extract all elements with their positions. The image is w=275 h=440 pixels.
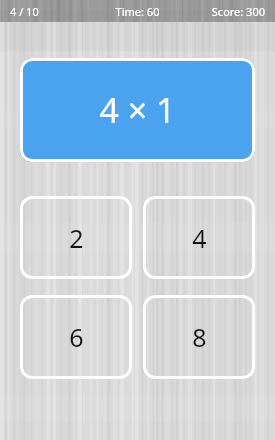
staticText: 6 <box>69 320 84 354</box>
button[interactable]: Answer 6 <box>20 295 132 379</box>
staticText: Time: 60 <box>95 4 180 19</box>
staticText: 2 <box>69 221 84 255</box>
button[interactable]: 4 × 1 <box>20 58 255 162</box>
staticText: Score: 300 <box>180 4 265 19</box>
button[interactable]: Answer 8 <box>143 295 255 379</box>
staticText: 8 <box>192 320 207 354</box>
staticText: 4 / 10 <box>10 4 95 19</box>
staticText: 4 <box>192 221 207 255</box>
button[interactable]: Answer 2 <box>20 196 132 279</box>
staticText: 4 × 1 <box>99 87 176 133</box>
button[interactable]: Answer 4 <box>143 196 255 279</box>
